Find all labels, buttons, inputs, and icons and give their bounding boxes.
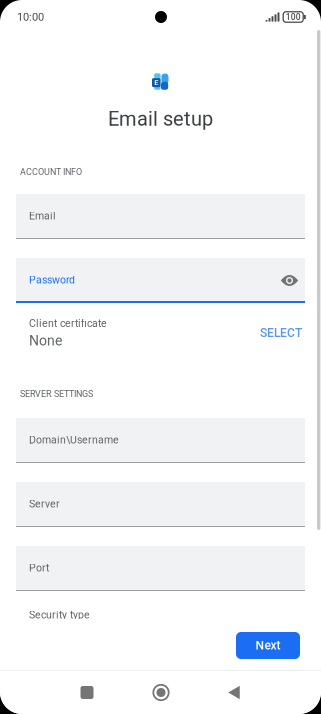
staticText: Next bbox=[255, 638, 280, 653]
staticText: SELECT bbox=[260, 326, 302, 340]
staticText: Email bbox=[29, 210, 56, 222]
staticText: Client certificate bbox=[29, 317, 107, 329]
staticText: Domain\Username bbox=[29, 434, 119, 446]
staticText: Email setup bbox=[108, 107, 213, 131]
staticText: Server bbox=[29, 498, 60, 510]
staticText: Security type bbox=[29, 609, 90, 621]
staticText: None bbox=[29, 332, 62, 349]
button[interactable]: Back bbox=[214, 674, 254, 711]
staticText: ACCOUNT INFO bbox=[20, 167, 82, 177]
staticText: Port bbox=[29, 562, 49, 574]
staticText: E bbox=[154, 78, 158, 87]
staticText: 10:00 bbox=[17, 11, 44, 23]
button[interactable]: Show password bbox=[276, 267, 303, 294]
button[interactable]: Recent apps bbox=[67, 674, 107, 711]
staticText: SERVER SETTINGS bbox=[20, 389, 93, 399]
staticText: 100 bbox=[286, 12, 301, 22]
staticText: Password bbox=[29, 274, 75, 286]
button[interactable]: Home bbox=[141, 674, 181, 711]
button[interactable]: Client certificate bbox=[16, 312, 305, 354]
button[interactable]: Next bbox=[236, 632, 300, 659]
